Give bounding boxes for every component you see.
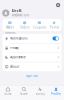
button[interactable]: Search xyxy=(16,87,32,96)
staticText: Coupons xyxy=(33,26,46,29)
button[interactable]: About xyxy=(2,62,61,71)
staticText: Search xyxy=(20,92,28,96)
button[interactable]: Appearance xyxy=(2,53,61,62)
staticText: Sign Out xyxy=(26,74,38,77)
button[interactable]: Points xyxy=(47,21,62,29)
staticText: Wallet xyxy=(6,26,14,29)
staticText: Appearance xyxy=(10,55,26,59)
staticText: Privacy xyxy=(10,46,18,50)
staticText: Profile xyxy=(51,92,61,96)
staticText: Notifications xyxy=(10,37,27,40)
staticText: Points xyxy=(50,26,59,29)
button[interactable]: Settings xyxy=(55,2,61,8)
staticText: About xyxy=(10,65,19,68)
staticText: alex@mail.com xyxy=(12,13,29,17)
staticText: Home xyxy=(4,92,12,96)
button[interactable]: Coupons xyxy=(32,21,47,29)
staticText: GENERAL xyxy=(4,31,15,34)
button[interactable]: Orders xyxy=(17,21,32,29)
button[interactable]: Profile xyxy=(48,87,64,96)
staticText: Activity xyxy=(35,92,44,96)
staticText: Orders xyxy=(20,26,29,29)
button[interactable]: Home xyxy=(0,87,16,96)
button[interactable]: Activity xyxy=(32,87,48,96)
staticText: Alex M. xyxy=(12,9,22,13)
button[interactable]: Notifications xyxy=(2,34,61,43)
button[interactable]: Sign Out xyxy=(0,71,64,80)
button[interactable]: Privacy xyxy=(2,43,61,52)
button[interactable]: Wallet xyxy=(2,21,17,29)
